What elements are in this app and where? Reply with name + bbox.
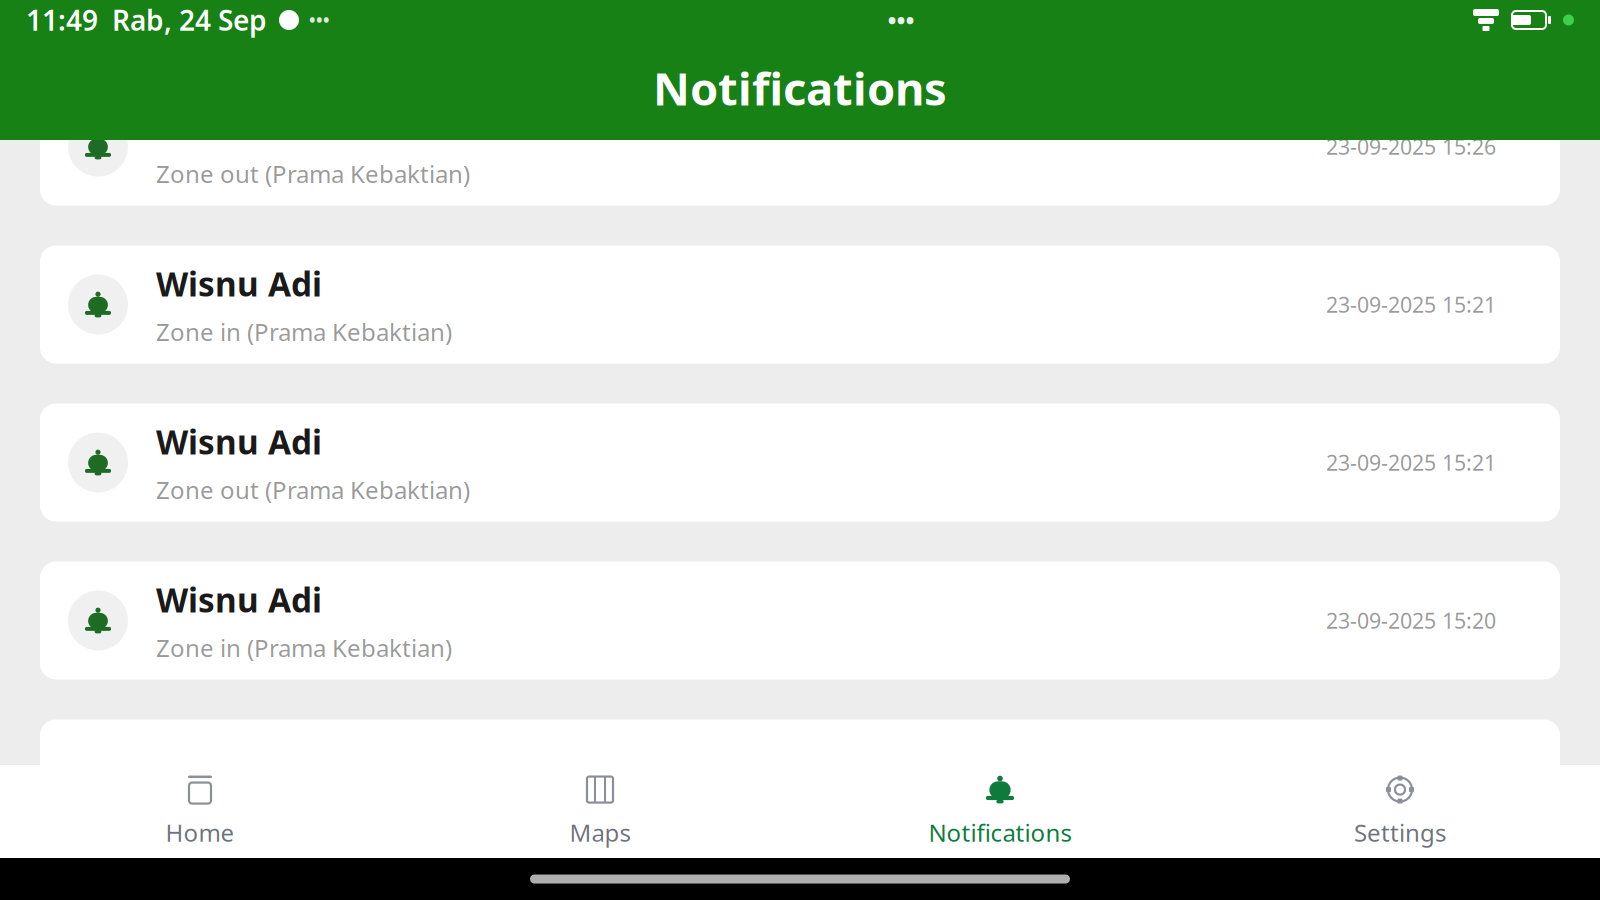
staticText: 23-09-2025 15:21 <box>1326 290 1496 319</box>
staticText: Wisnu Adi <box>156 103 322 148</box>
staticText: Rab, 24 Sep <box>112 1 267 39</box>
staticText: 23-09-2025 15:20 <box>1326 606 1496 635</box>
button[interactable]: Wisnu Adi <box>40 403 1560 521</box>
staticText: Maps <box>569 817 630 848</box>
staticText: 11:49 <box>26 1 98 39</box>
staticText: 23-09-2025 15:26 <box>1326 132 1496 161</box>
button[interactable]: Wisnu Adi <box>40 561 1560 679</box>
button[interactable]: Home <box>0 765 400 858</box>
button[interactable]: Wisnu Adi <box>40 87 1560 205</box>
staticText: ••• <box>887 4 914 36</box>
button[interactable]: Maps <box>400 765 800 858</box>
staticText: Zone in (Prama Kebaktian) <box>156 316 452 348</box>
staticText: Wisnu Adi <box>156 419 322 464</box>
staticText: Zone out (Prama Kebaktian) <box>156 474 470 506</box>
staticText: ••• <box>309 8 330 31</box>
staticText: Home <box>165 817 234 848</box>
button[interactable]: Wisnu Adi <box>40 245 1560 363</box>
button[interactable]: Notifications <box>800 765 1200 858</box>
staticText: 23-09-2025 15:21 <box>1326 448 1496 477</box>
staticText: Wisnu Adi <box>156 261 322 306</box>
staticText: Zone in (Prama Kebaktian) <box>156 632 452 664</box>
staticText: Settings <box>1354 817 1446 848</box>
button[interactable]: Settings <box>1200 765 1600 858</box>
staticText: Notifications <box>928 817 1071 848</box>
staticText: Wisnu Adi <box>156 577 322 622</box>
staticText: Zone out (Prama Kebaktian) <box>156 158 470 190</box>
staticText: Notifications <box>653 58 947 118</box>
